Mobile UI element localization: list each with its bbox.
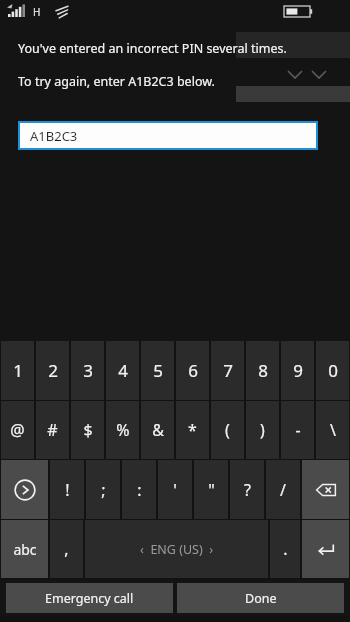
- staticText: To try again, enter A1B2C3 below.: [18, 73, 215, 90]
- button[interactable]: ": [194, 460, 228, 519]
- button[interactable]: Shift: [1, 460, 48, 519]
- button[interactable]: \: [316, 401, 349, 459]
- button[interactable]: 4: [106, 341, 139, 400]
- staticText: ": [208, 479, 215, 501]
- button[interactable]: .: [270, 520, 300, 578]
- staticText: abc: [13, 540, 37, 559]
- button[interactable]: :: [122, 460, 156, 519]
- staticText: ': [173, 479, 177, 501]
- staticText: $: [83, 419, 93, 441]
- staticText: 7: [223, 359, 233, 382]
- button[interactable]: @: [1, 401, 34, 459]
- button[interactable]: abc: [1, 520, 48, 578]
- staticText: 2: [48, 359, 58, 382]
- staticText: /: [280, 479, 286, 501]
- button[interactable]: -: [281, 401, 314, 459]
- button[interactable]: *: [176, 401, 209, 459]
- button[interactable]: !: [50, 460, 84, 519]
- staticText: 0: [328, 359, 338, 382]
- button[interactable]: 5: [141, 341, 174, 400]
- staticText: Emergency call: [45, 590, 134, 607]
- staticText: .: [283, 538, 288, 560]
- button[interactable]: 1: [1, 341, 34, 400]
- staticText: (: [225, 419, 230, 441]
- staticText: !: [65, 479, 70, 501]
- button[interactable]: 6: [176, 341, 209, 400]
- staticText: *: [188, 419, 197, 441]
- staticText: \: [330, 419, 336, 441]
- button[interactable]: Enter: [302, 520, 349, 578]
- button[interactable]: A1B2C3: [20, 123, 316, 148]
- button[interactable]: &: [141, 401, 174, 459]
- staticText: ;: [101, 479, 106, 501]
- button[interactable]: ,: [50, 520, 83, 578]
- button[interactable]: ): [246, 401, 279, 459]
- staticText: %: [116, 419, 130, 441]
- staticText: 5: [153, 359, 163, 382]
- staticText: 1: [13, 359, 23, 382]
- staticText: 9: [293, 359, 303, 382]
- staticText: @: [10, 419, 25, 441]
- staticText: ?: [244, 479, 251, 501]
- button[interactable]: %: [106, 401, 139, 459]
- button[interactable]: 8: [246, 341, 279, 400]
- button[interactable]: 0: [316, 341, 349, 400]
- button[interactable]: 2: [36, 341, 69, 400]
- staticText: Done: [245, 590, 277, 607]
- button[interactable]: ;: [86, 460, 120, 519]
- button[interactable]: 9: [281, 341, 314, 400]
- button[interactable]: Done: [177, 583, 344, 613]
- staticText: 8: [258, 359, 268, 382]
- button[interactable]: ‹ ENG (US) ›: [85, 520, 268, 578]
- button[interactable]: Backspace: [302, 460, 349, 519]
- staticText: 3: [83, 359, 93, 382]
- button[interactable]: ': [158, 460, 192, 519]
- staticText: A1B2C3: [30, 127, 78, 145]
- button[interactable]: Emergency call: [6, 583, 173, 613]
- staticText: ): [260, 419, 265, 441]
- button[interactable]: #: [36, 401, 69, 459]
- button[interactable]: (: [211, 401, 244, 459]
- button[interactable]: 3: [71, 341, 104, 400]
- button[interactable]: 7: [211, 341, 244, 400]
- staticText: 4: [118, 359, 128, 382]
- staticText: #: [47, 419, 58, 441]
- staticText: H: [33, 5, 41, 19]
- button[interactable]: $: [71, 401, 104, 459]
- button[interactable]: ?: [230, 460, 264, 519]
- staticText: ,: [64, 538, 69, 560]
- staticText: &: [152, 419, 164, 441]
- staticText: You've entered an incorrect PIN several …: [18, 40, 287, 57]
- staticText: :: [137, 479, 142, 501]
- button[interactable]: /: [266, 460, 300, 519]
- staticText: -: [295, 419, 301, 441]
- staticText: 6: [188, 359, 198, 382]
- staticText: ‹ ENG (US) ›: [140, 541, 214, 558]
